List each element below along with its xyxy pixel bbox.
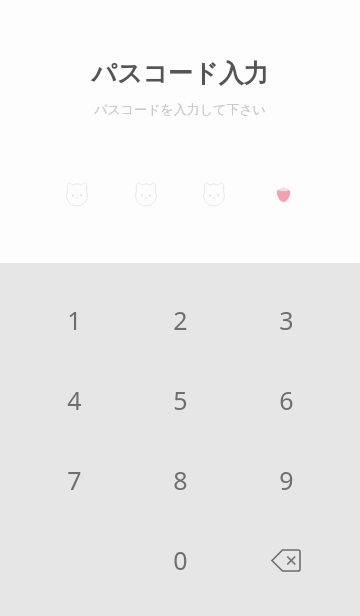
staticText: パスコード入力 bbox=[91, 58, 269, 89]
staticText: 4 bbox=[67, 383, 82, 417]
staticText: 7 bbox=[67, 463, 82, 497]
button[interactable]: 6 bbox=[233, 360, 339, 440]
button[interactable]: 5 bbox=[127, 360, 233, 440]
button[interactable]: 1 bbox=[21, 280, 127, 360]
button[interactable]: 7 bbox=[21, 440, 127, 520]
button[interactable]: 2 bbox=[127, 280, 233, 360]
staticText: 3 bbox=[279, 303, 294, 337]
staticText: 0 bbox=[173, 543, 188, 577]
staticText: 6 bbox=[279, 383, 294, 417]
button[interactable]: 3 bbox=[233, 280, 339, 360]
staticText: 1 bbox=[67, 303, 82, 337]
staticText: パスコードを入力して下さい bbox=[94, 101, 266, 117]
button[interactable]: 9 bbox=[233, 440, 339, 520]
button[interactable]: 0 bbox=[127, 520, 233, 600]
button[interactable]: Backspace bbox=[233, 520, 339, 600]
button[interactable]: 4 bbox=[21, 360, 127, 440]
button[interactable]: 8 bbox=[127, 440, 233, 520]
staticText: 9 bbox=[279, 463, 294, 497]
staticText: 2 bbox=[173, 303, 188, 337]
staticText: 5 bbox=[173, 383, 188, 417]
staticText: 8 bbox=[173, 463, 188, 497]
